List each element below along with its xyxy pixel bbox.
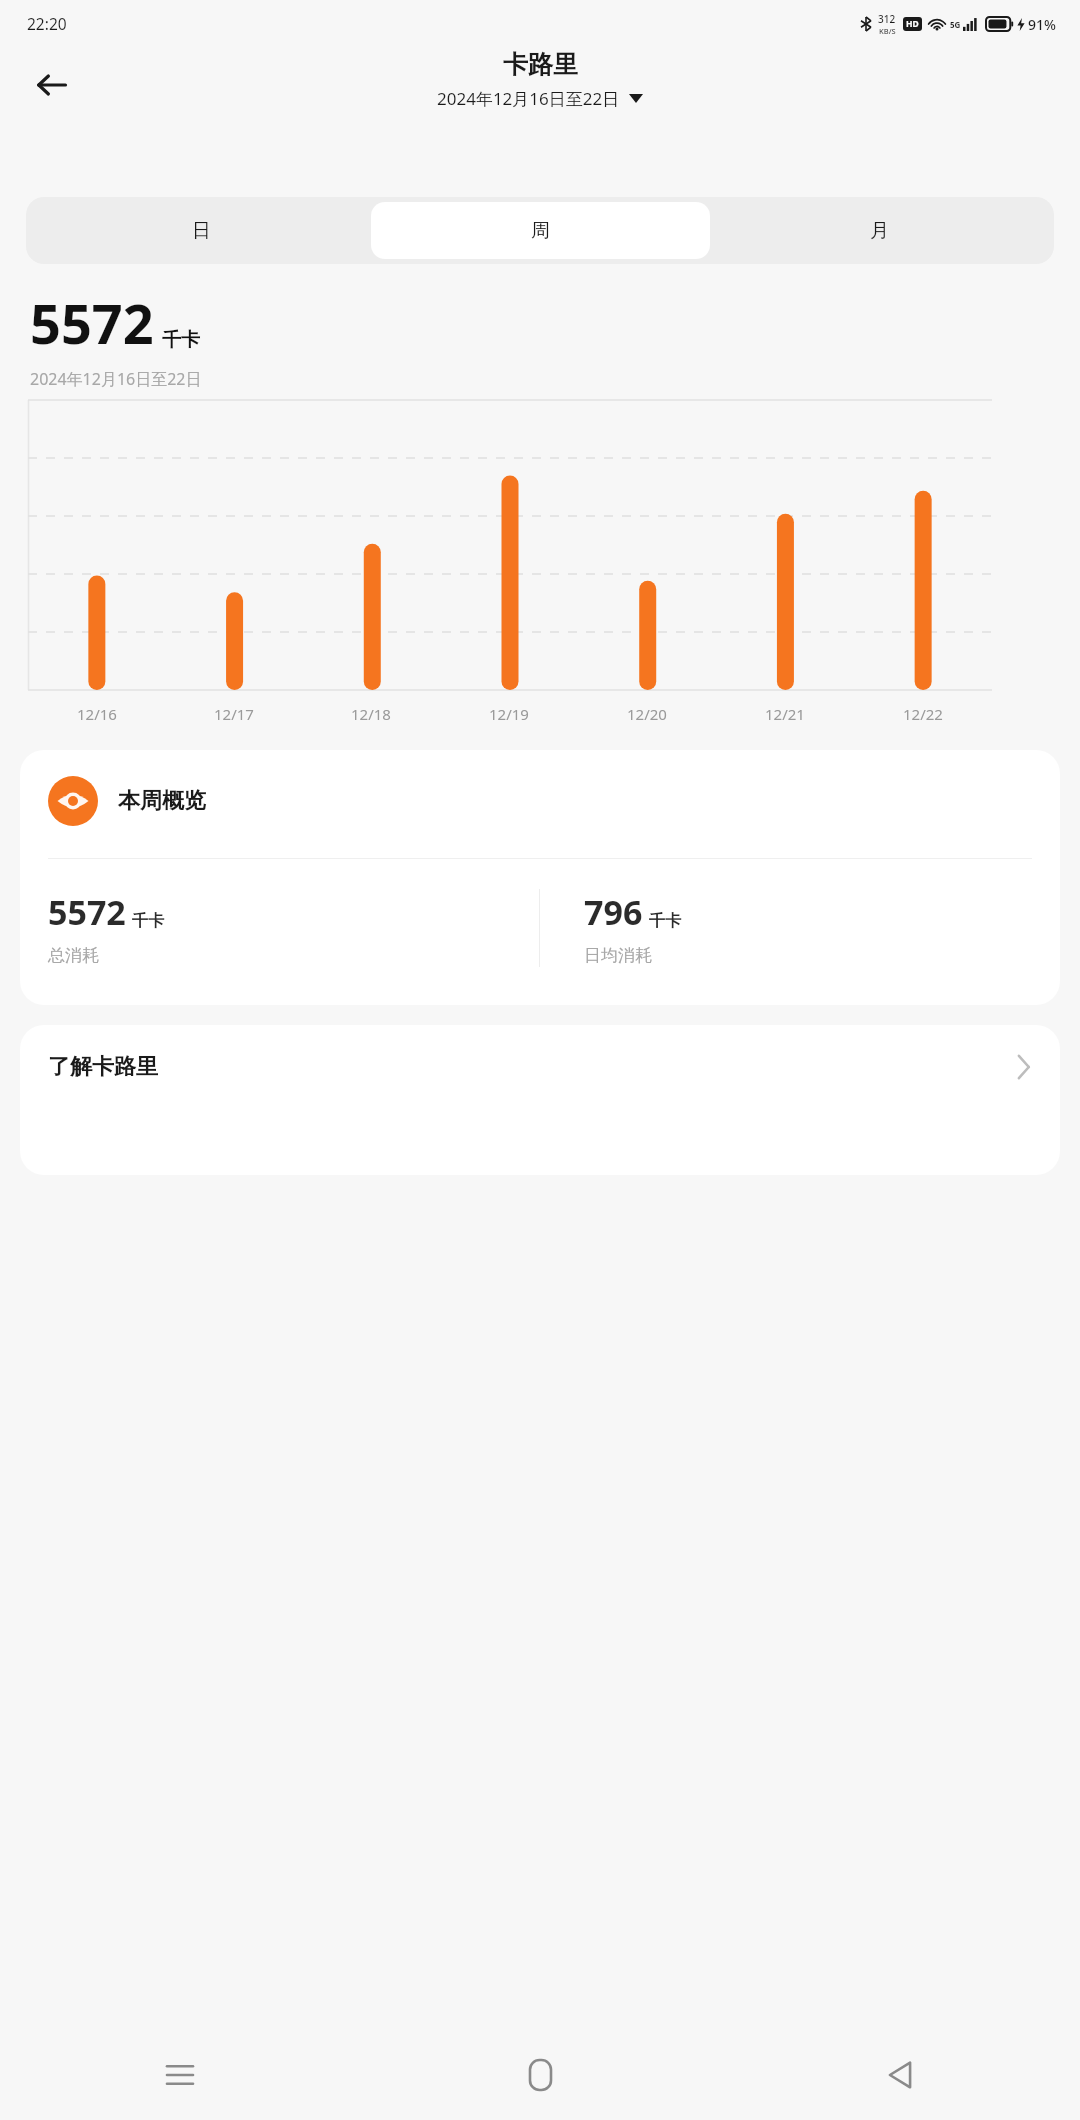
staticText: 5572	[30, 286, 154, 360]
staticText: 12/18	[351, 704, 391, 724]
button[interactable]: Home	[360, 2030, 720, 2120]
button[interactable]: 月	[710, 202, 1049, 259]
staticText: KB/S	[879, 26, 896, 36]
staticText: 周	[531, 219, 550, 243]
staticText: HD	[906, 18, 919, 30]
staticText: 2024年12月16日至22日	[30, 368, 202, 390]
staticText: 796	[584, 889, 643, 935]
button[interactable]: Recents	[0, 2030, 360, 2120]
button[interactable]: Back	[720, 2030, 1080, 2120]
staticText: 12/16	[77, 704, 117, 724]
staticText: 日	[192, 219, 211, 243]
button[interactable]: 本周概览	[20, 750, 1060, 1005]
staticText: 了解卡路里	[48, 1053, 1016, 1081]
staticText: 12/21	[765, 704, 805, 724]
staticText: 千卡	[132, 911, 164, 931]
staticText: 千卡	[649, 911, 681, 931]
staticText: 卡路里	[503, 49, 578, 80]
staticText: 总消耗	[48, 945, 99, 966]
staticText: 12/22	[903, 704, 943, 724]
button[interactable]: 周	[371, 202, 710, 259]
button[interactable]: 了解卡路里	[20, 1025, 1060, 1175]
staticText: 91%	[1028, 15, 1056, 34]
button[interactable]: 日	[31, 202, 371, 259]
button[interactable]: 2024年12月16日至22日	[437, 87, 643, 110]
staticText: 本周概览	[118, 787, 206, 815]
staticText: 5G	[950, 19, 961, 30]
staticText: 日均消耗	[584, 945, 652, 966]
staticText: 22:20	[27, 13, 67, 34]
staticText: 12/17	[214, 704, 254, 724]
staticText: 312	[878, 12, 896, 26]
staticText: 月	[870, 219, 889, 243]
button[interactable]: Back	[22, 55, 82, 115]
staticText: 5572	[48, 889, 126, 935]
staticText: 12/19	[489, 704, 529, 724]
staticText: 12/20	[627, 704, 667, 724]
staticText: 千卡	[162, 328, 200, 352]
staticText: 2024年12月16日至22日	[437, 87, 620, 110]
